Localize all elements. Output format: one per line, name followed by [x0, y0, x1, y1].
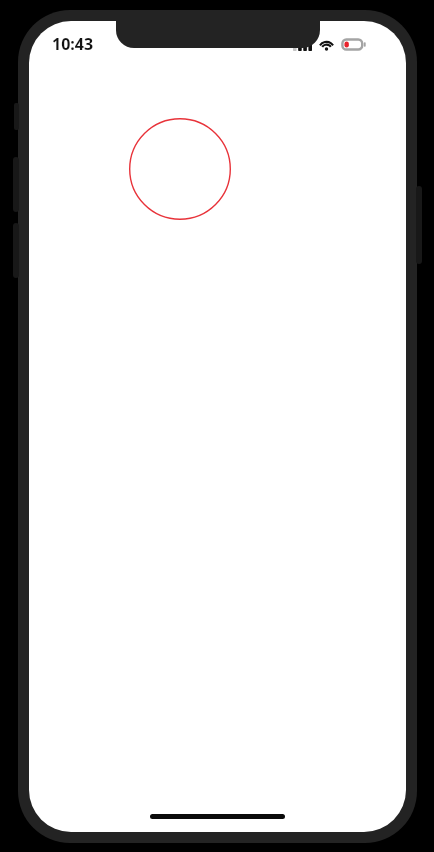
button[interactable]: Circle [129, 118, 231, 220]
staticText: 10:43 [52, 33, 94, 55]
